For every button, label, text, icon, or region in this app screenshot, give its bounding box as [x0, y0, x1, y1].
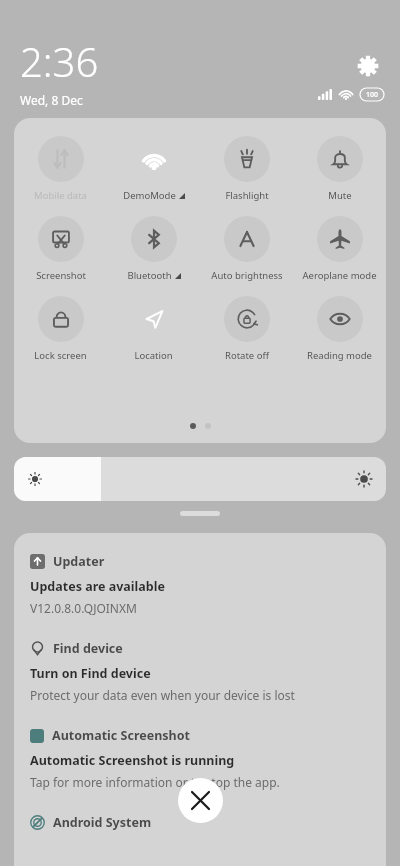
button[interactable]: Automatic Screenshot: [30, 727, 370, 744]
staticText: Mobile data: [34, 189, 87, 202]
staticText: Screenshot: [36, 269, 86, 282]
button[interactable]: Brightness: [14, 457, 386, 501]
staticText: Flashlight: [225, 189, 269, 202]
staticText: DemoMode: [123, 189, 176, 202]
button[interactable]: Lock screen: [14, 296, 107, 362]
staticText: Updates are available: [30, 578, 165, 595]
staticText: 100: [366, 90, 379, 100]
button[interactable]: Screenshot: [14, 216, 107, 282]
button[interactable]: Bluetooth: [107, 216, 200, 282]
button[interactable]: Android System: [30, 814, 370, 831]
staticText: Location: [134, 349, 173, 362]
staticText: Protect your data even when your device …: [30, 687, 295, 703]
button[interactable]: Auto brightness: [200, 216, 293, 282]
staticText: Automatic Screenshot is running: [30, 752, 235, 769]
button[interactable]: Mobile data: [14, 136, 107, 202]
button[interactable]: Aeroplane mode: [293, 216, 386, 282]
button[interactable]: Settings: [350, 48, 386, 84]
staticText: Auto brightness: [211, 269, 283, 282]
staticText: Automatic Screenshot: [52, 727, 190, 744]
button[interactable]: DemoMode: [107, 136, 200, 202]
staticText: Turn on Find device: [30, 665, 151, 682]
staticText: Bluetooth: [127, 269, 172, 282]
staticText: Updater: [53, 553, 105, 570]
button[interactable]: Location: [107, 296, 200, 362]
staticText: Find device: [53, 640, 123, 657]
staticText: V12.0.8.0.QJOINXM: [30, 600, 137, 616]
staticText: 2:36: [20, 34, 99, 88]
staticText: Tap for more information or to stop the …: [30, 774, 280, 790]
staticText: Wed, 8 Dec: [20, 92, 83, 108]
staticText: Lock screen: [34, 349, 87, 362]
button[interactable]: Updater: [30, 553, 370, 570]
staticText: Rotate off: [225, 349, 269, 362]
staticText: Aeroplane mode: [302, 269, 377, 282]
button[interactable]: Find device: [30, 640, 370, 657]
button[interactable]: Close: [178, 778, 223, 823]
button[interactable]: Mute: [293, 136, 386, 202]
staticText: Reading mode: [307, 349, 372, 362]
button[interactable]: Rotate off: [200, 296, 293, 362]
button[interactable]: Reading mode: [293, 296, 386, 362]
staticText: Mute: [328, 189, 352, 202]
button[interactable]: Flashlight: [200, 136, 293, 202]
staticText: Android System: [53, 814, 152, 831]
